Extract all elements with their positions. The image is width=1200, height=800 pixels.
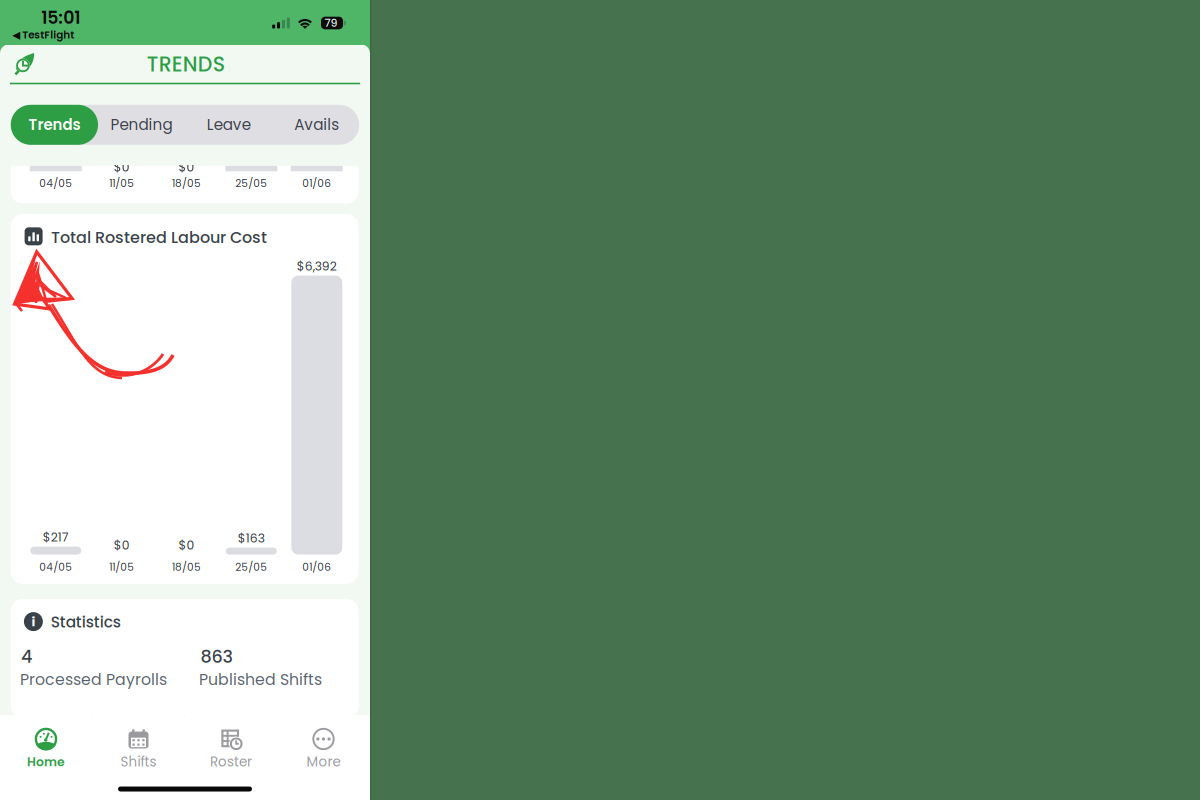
staticText: 04/05 bbox=[39, 560, 72, 574]
button[interactable]: Avails bbox=[280, 105, 354, 145]
staticText: Published Shifts bbox=[199, 669, 322, 691]
staticText: Roster bbox=[210, 752, 252, 771]
staticText: TRENDS bbox=[147, 50, 225, 78]
staticText: 25/05 bbox=[235, 560, 267, 574]
staticText: 863 bbox=[200, 644, 232, 669]
staticText: $6,392 bbox=[297, 257, 337, 275]
button[interactable]: Menu bbox=[7, 46, 41, 82]
staticText: i bbox=[31, 612, 35, 631]
staticText: 04/05 bbox=[39, 176, 72, 190]
staticText: 15:01 bbox=[41, 5, 80, 30]
staticText: Total Rostered Labour Cost bbox=[51, 226, 267, 249]
staticText: 18/05 bbox=[172, 560, 201, 574]
staticText: $0 bbox=[178, 159, 194, 176]
staticText: $0 bbox=[178, 536, 194, 554]
button[interactable]: Pending bbox=[99, 105, 183, 145]
staticText: 01/06 bbox=[302, 176, 331, 190]
staticText: $0 bbox=[114, 159, 130, 176]
staticText: Processed Payrolls bbox=[20, 669, 167, 691]
button[interactable]: Roster bbox=[185, 715, 277, 771]
staticText: Leave bbox=[207, 114, 251, 135]
staticText: $0 bbox=[114, 536, 130, 554]
staticText: Shifts bbox=[120, 752, 156, 771]
button[interactable]: Trends bbox=[11, 105, 98, 145]
staticText: Trends bbox=[28, 114, 80, 135]
staticText: ◀ TestFlight bbox=[12, 27, 74, 42]
button[interactable]: Shifts bbox=[92, 715, 184, 771]
button[interactable]: Leave bbox=[192, 105, 266, 145]
staticText: 11/05 bbox=[109, 560, 134, 574]
staticText: 11/05 bbox=[109, 176, 134, 190]
staticText: $163 bbox=[238, 529, 265, 547]
staticText: Pending bbox=[110, 114, 172, 135]
staticText: Statistics bbox=[51, 611, 121, 633]
staticText: More bbox=[306, 752, 340, 771]
staticText: 25/05 bbox=[235, 176, 267, 190]
staticText: Avails bbox=[294, 114, 339, 135]
staticText: 18/05 bbox=[172, 176, 201, 190]
staticText: $217 bbox=[43, 528, 69, 546]
button[interactable]: Home bbox=[0, 715, 92, 771]
staticText: Home bbox=[27, 753, 65, 770]
staticText: 01/06 bbox=[302, 560, 331, 574]
staticText: 4 bbox=[21, 644, 32, 669]
staticText: 79 bbox=[324, 15, 337, 31]
button[interactable]: More bbox=[277, 715, 369, 771]
